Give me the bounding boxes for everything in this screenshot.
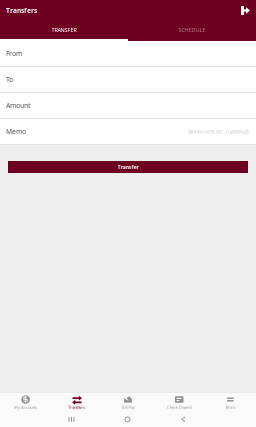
staticText: To: [6, 75, 13, 84]
button[interactable]: Transfers: [51, 393, 102, 412]
staticText: dinner, rent, etc. (optional): [188, 128, 249, 135]
staticText: Check Deposit: [167, 404, 192, 410]
button[interactable]: SCHEDULE: [128, 21, 256, 41]
button[interactable]: Check Deposit: [154, 393, 205, 412]
staticText: Bill Pay: [121, 404, 134, 410]
staticText: Transfers: [6, 6, 37, 15]
button[interactable]: Transfer: [8, 161, 248, 173]
button[interactable]: My Accounts: [0, 393, 51, 412]
staticText: Amount: [6, 101, 30, 110]
button[interactable]: Bill Pay: [102, 393, 154, 412]
button[interactable]: Log out: [233, 2, 251, 19]
staticText: More: [225, 404, 235, 410]
staticText: Transfer: [117, 163, 138, 171]
staticText: From: [6, 49, 22, 58]
staticText: TRANSFER: [51, 26, 76, 34]
staticText: SCHEDULE: [178, 26, 205, 34]
staticText: My Accounts: [14, 404, 37, 410]
staticText: Transfers: [68, 404, 85, 410]
button[interactable]: Home: [113, 412, 141, 427]
button[interactable]: More: [205, 393, 256, 412]
staticText: Memo: [6, 127, 26, 136]
button[interactable]: Recents: [57, 412, 85, 427]
button[interactable]: Back: [169, 412, 197, 427]
button[interactable]: TRANSFER: [0, 21, 128, 41]
